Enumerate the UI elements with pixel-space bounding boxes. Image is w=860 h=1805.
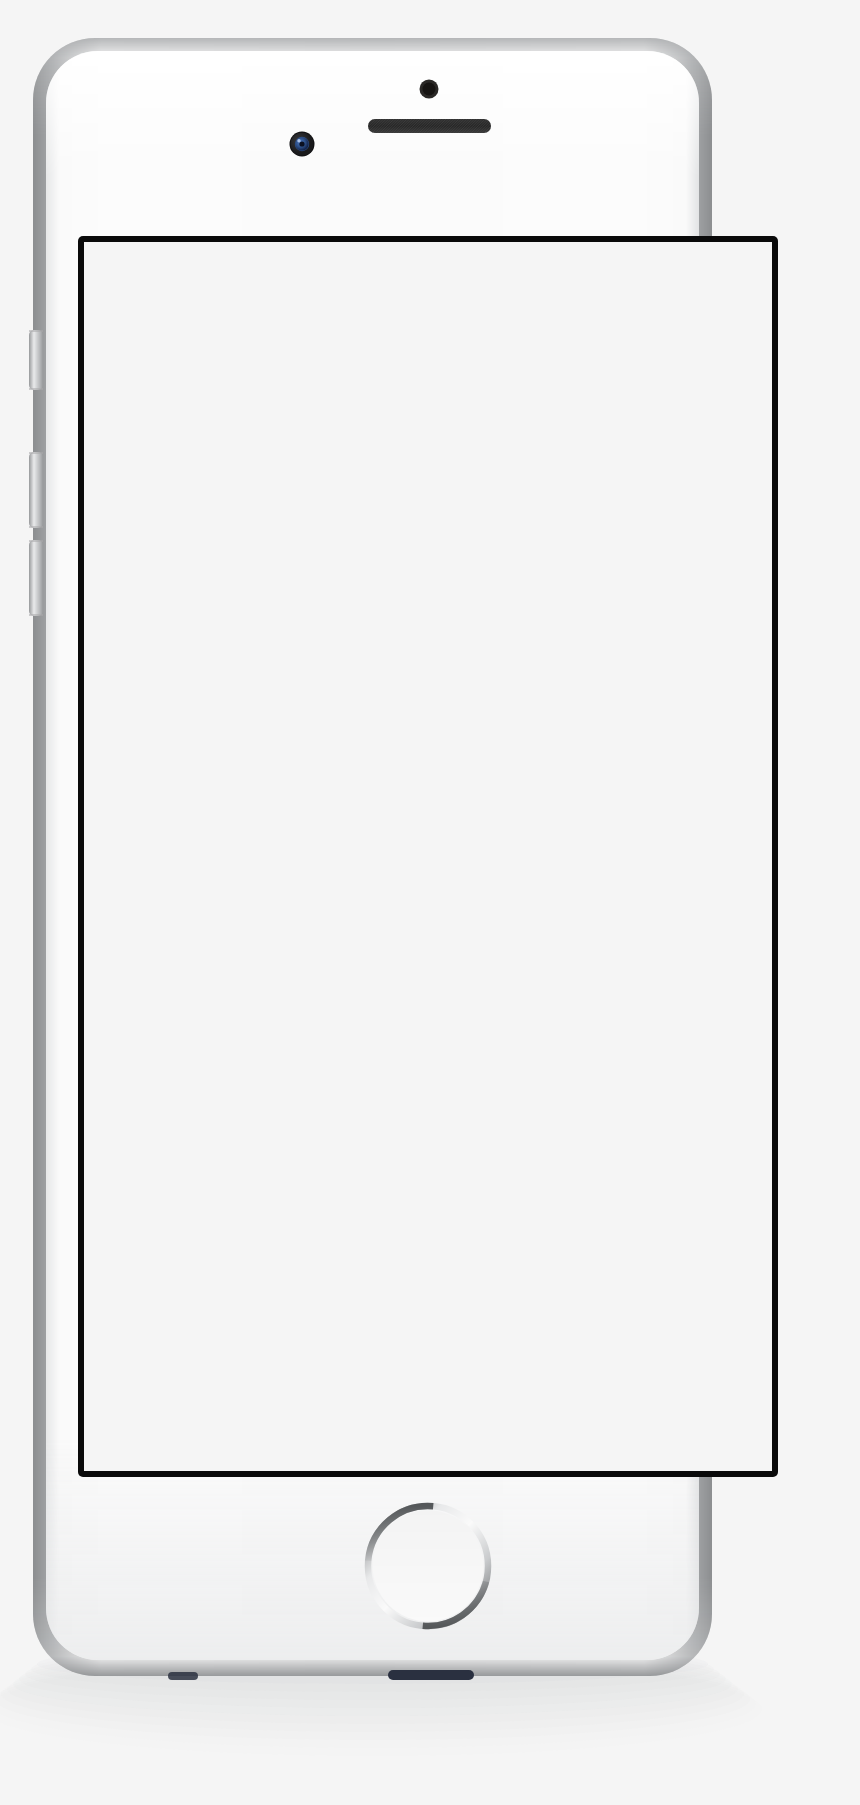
button[interactable]: iPhone device mockup with blank screen	[0, 0, 860, 1805]
